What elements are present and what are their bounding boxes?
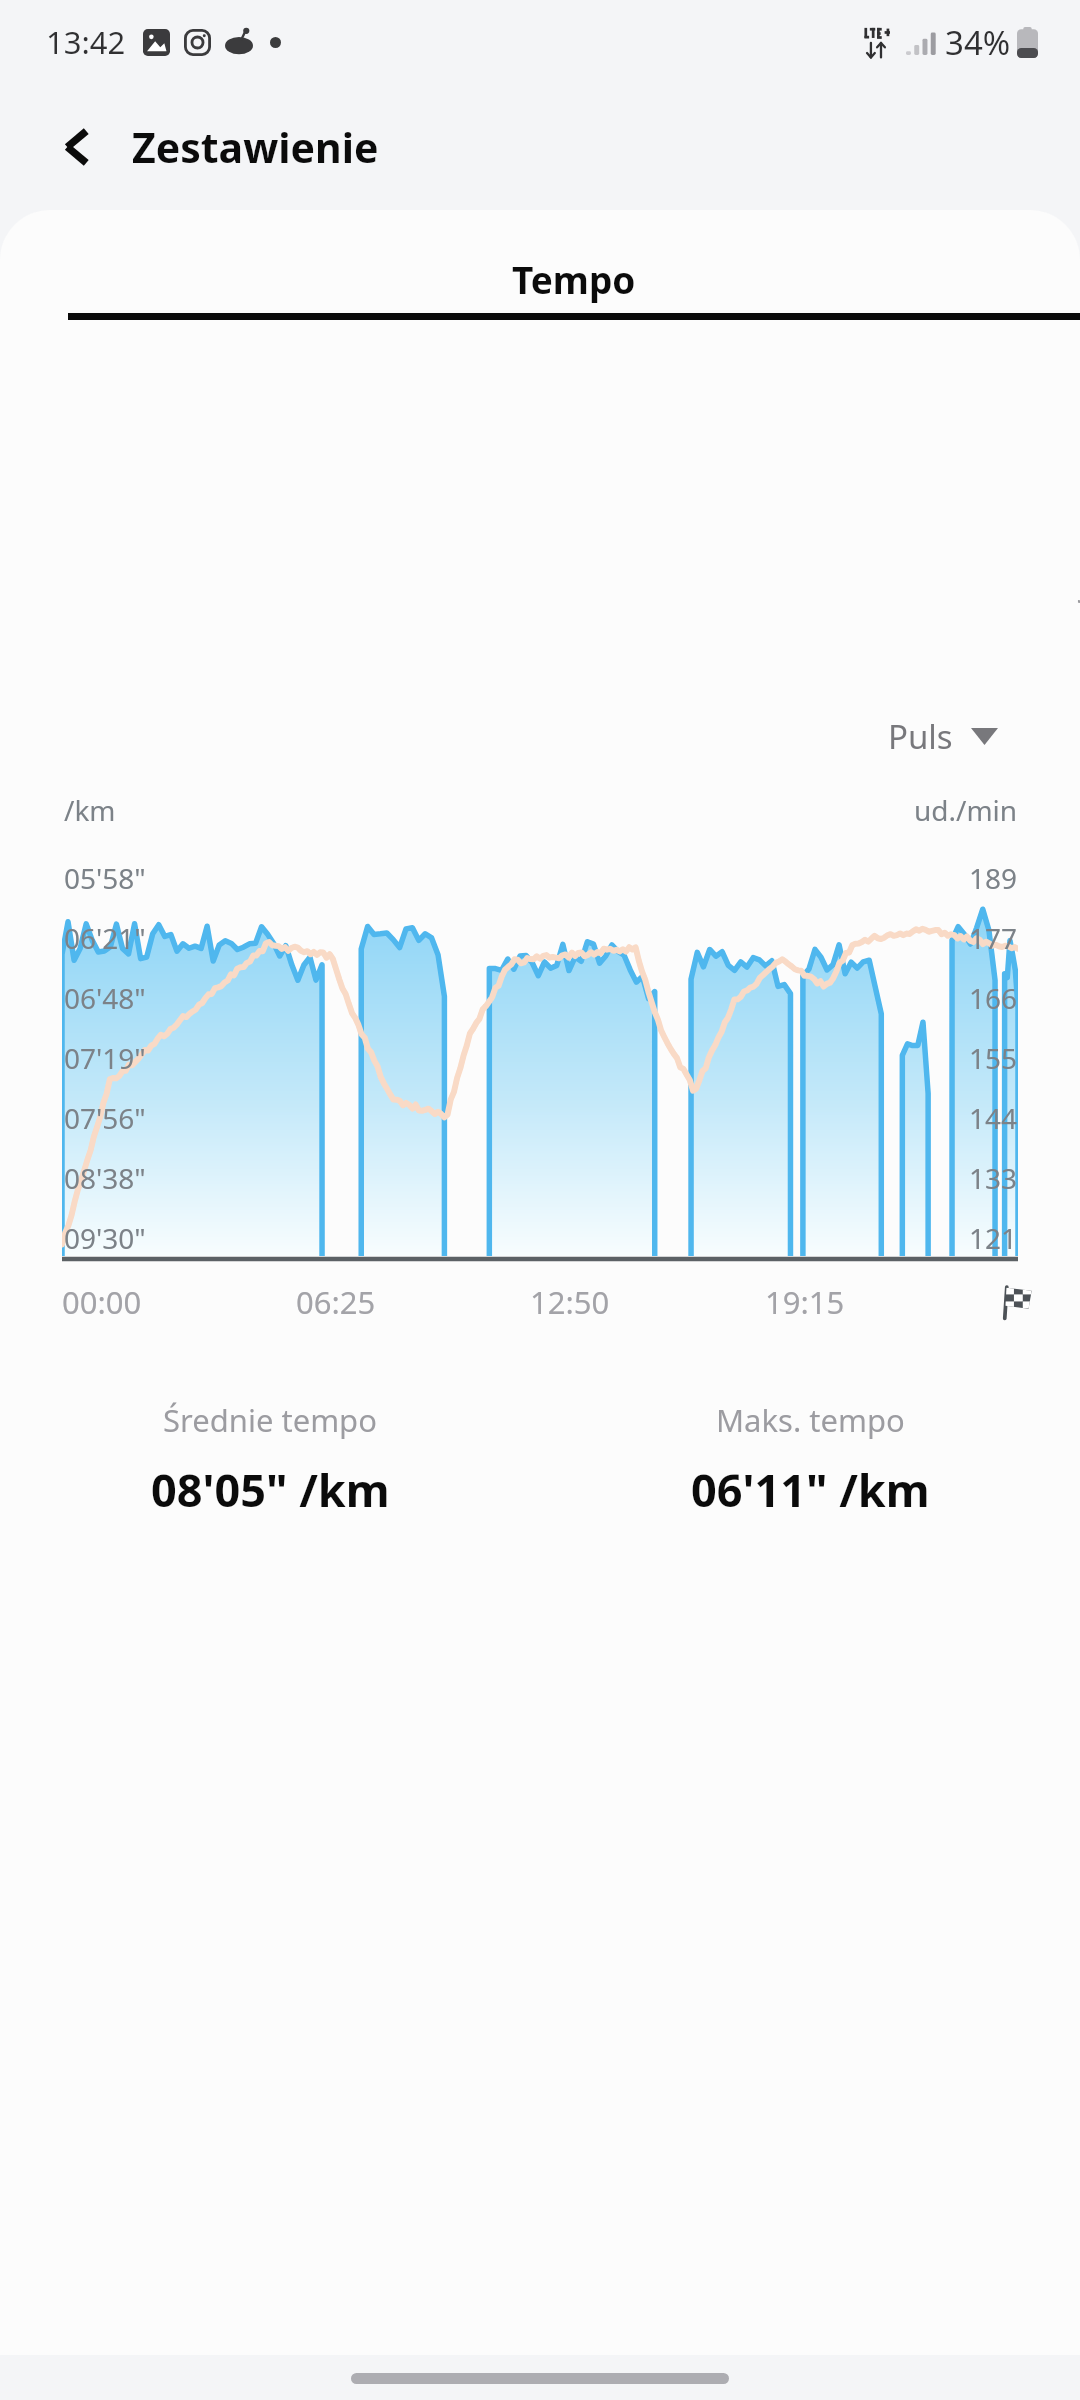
staticText: 166 (969, 979, 1018, 1017)
staticText: 155 (969, 1039, 1018, 1077)
staticText: 07'56" (64, 1099, 146, 1137)
staticText: 08'05" /km (151, 1459, 390, 1520)
staticText: 34% (945, 20, 1011, 65)
staticText: 13:42 (46, 21, 126, 63)
staticText: Puls (888, 714, 953, 759)
staticText: 06'21" (64, 919, 146, 957)
staticText: 09'30" (64, 1219, 146, 1257)
staticText: Zestawienie (132, 119, 379, 175)
staticText: 19:15 (765, 1281, 845, 1323)
staticText: 144 (969, 1099, 1018, 1137)
staticText: 177 (969, 919, 1018, 957)
staticText: Maks. tempo (716, 1399, 905, 1441)
button[interactable]: Puls (880, 706, 1006, 767)
staticText: 06:25 (296, 1281, 376, 1323)
staticText: 121 (969, 1219, 1018, 1257)
staticText: 00:00 (62, 1281, 142, 1323)
staticText: /km (64, 791, 116, 829)
button[interactable]: Back (38, 108, 116, 186)
staticText: 189 (969, 859, 1018, 897)
staticText: 07'19" (64, 1039, 146, 1077)
staticText: 08'38" (64, 1159, 146, 1197)
staticText: 06'48" (64, 979, 146, 1017)
staticText: 06'11" /km (691, 1459, 930, 1520)
staticText: 12:50 (530, 1281, 610, 1323)
staticText: 133 (969, 1159, 1018, 1197)
button[interactable]: Średnie tempo (0, 1395, 540, 1524)
button[interactable]: Maks. tempo (540, 1395, 1080, 1524)
staticText: Tempo (512, 254, 636, 304)
staticText: ud./min (914, 791, 1018, 829)
staticText: Średnie tempo (163, 1399, 377, 1441)
button[interactable]: Tempo (68, 254, 1080, 320)
staticText: 05'58" (64, 859, 146, 897)
